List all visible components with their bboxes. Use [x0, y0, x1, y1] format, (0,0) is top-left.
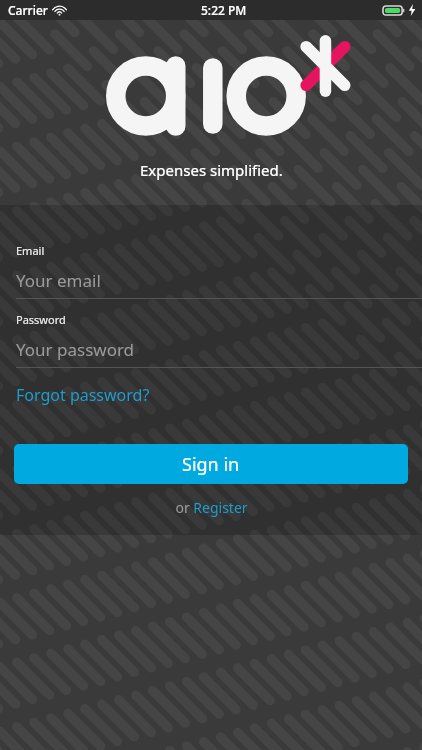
button[interactable]: Your email [0, 265, 422, 295]
staticText: Email [16, 243, 45, 258]
button[interactable]: Sign in [14, 444, 408, 484]
button[interactable]: or Register [165, 495, 258, 520]
staticText: or Register [175, 498, 248, 517]
staticText: Password [16, 312, 66, 327]
staticText: Sign in [182, 452, 240, 477]
staticText: 5:22 PM [201, 2, 247, 18]
staticText: Forgot password? [16, 384, 150, 406]
staticText: Carrier [8, 2, 48, 18]
staticText: Your email [16, 269, 101, 292]
staticText: Expenses simplified. [140, 160, 283, 180]
button[interactable]: Forgot password? [0, 380, 166, 410]
button[interactable]: Your password [0, 334, 422, 364]
staticText: Your password [16, 338, 135, 361]
